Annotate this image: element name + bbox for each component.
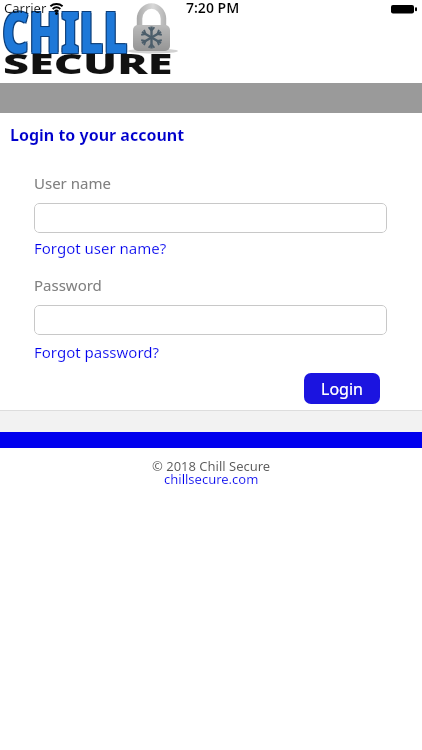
staticText: 7:20 PM xyxy=(186,0,240,17)
staticText: User name xyxy=(34,173,111,193)
staticText: CHILL xyxy=(1,0,127,69)
staticText: chillsecure.com xyxy=(164,470,259,488)
staticText: Password xyxy=(34,275,102,295)
staticText: SECURE xyxy=(3,44,174,82)
staticText: CHILL xyxy=(2,0,128,70)
button[interactable]: Forgot user name? xyxy=(34,238,167,258)
staticText: CHILL xyxy=(1,0,127,71)
button[interactable]: chillsecure.com xyxy=(164,470,259,488)
staticText: Carrier xyxy=(4,0,47,17)
button[interactable]: Login xyxy=(304,373,380,404)
staticText: Forgot password? xyxy=(34,342,160,362)
staticText: CHILL xyxy=(3,0,129,69)
button[interactable] xyxy=(34,305,387,335)
button[interactable] xyxy=(34,203,387,233)
staticText: Forgot user name? xyxy=(34,238,167,258)
staticText: Login to your account xyxy=(10,124,185,146)
staticText: © 2018 Chill Secure xyxy=(152,457,271,475)
staticText: Login xyxy=(321,378,363,400)
staticText: CHILL xyxy=(3,0,129,71)
button[interactable]: Forgot password? xyxy=(34,342,160,362)
